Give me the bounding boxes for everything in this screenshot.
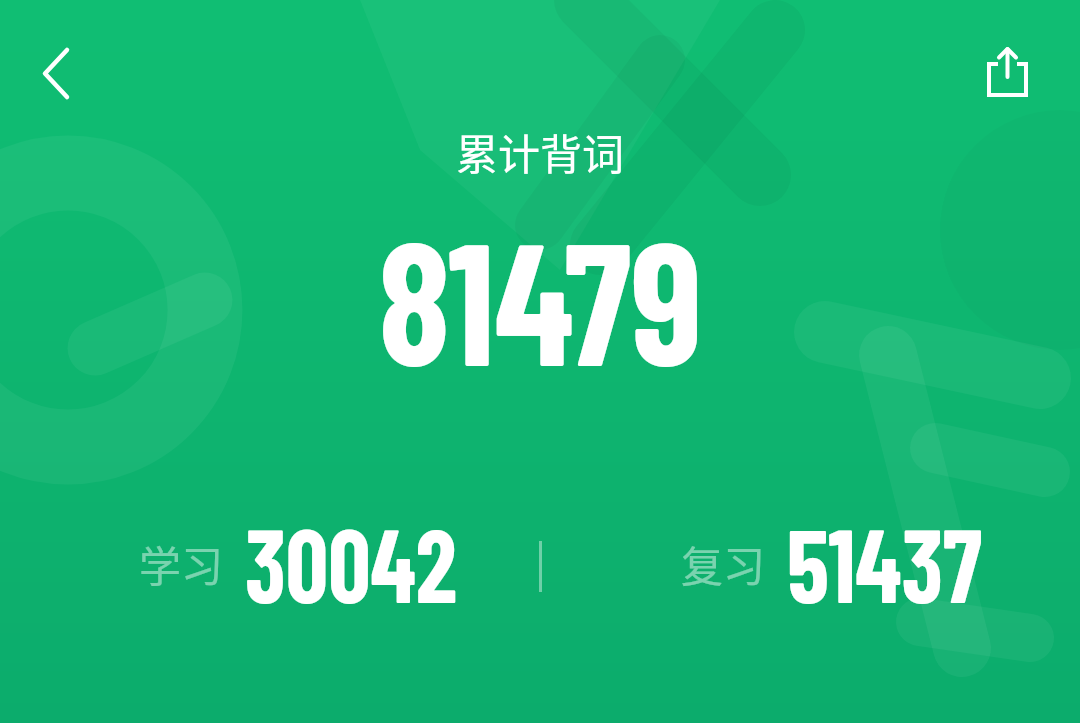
staticText: 30042 <box>245 500 457 624</box>
button[interactable] <box>971 37 1043 109</box>
staticText: 学习 <box>139 533 224 594</box>
button[interactable] <box>20 37 92 109</box>
staticText: 81479 <box>378 194 703 400</box>
staticText: 复习 <box>681 533 766 594</box>
staticText: 累计背词 <box>456 121 625 182</box>
staticText: 51437 <box>787 500 983 624</box>
